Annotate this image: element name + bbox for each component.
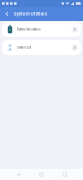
button[interactable]: Back xyxy=(3,10,10,18)
staticText: Sensors List xyxy=(17,46,31,49)
button[interactable]: Home xyxy=(37,170,46,179)
button[interactable]: Recent apps xyxy=(60,170,69,179)
staticText: System Utilities xyxy=(13,11,46,17)
button[interactable]: Back xyxy=(14,170,23,179)
staticText: Battery Information xyxy=(17,28,40,31)
button[interactable]: Battery Information xyxy=(2,22,81,37)
button[interactable]: Sensors List xyxy=(2,40,81,55)
